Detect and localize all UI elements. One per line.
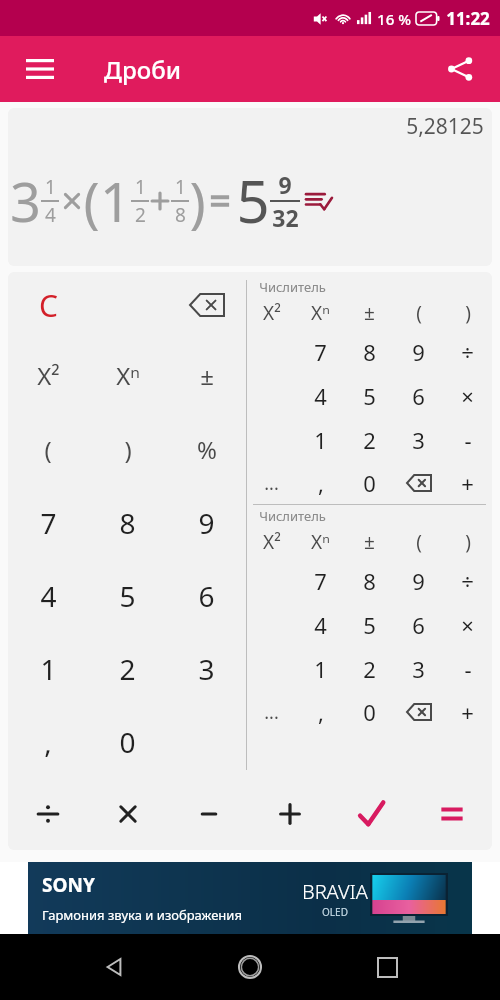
button[interactable]: ×	[443, 374, 492, 418]
staticText: -	[464, 425, 472, 455]
button[interactable]: +	[443, 462, 492, 504]
button[interactable]: ,	[8, 705, 88, 778]
button[interactable]: )	[443, 525, 492, 559]
button[interactable]: 3	[394, 418, 443, 462]
button[interactable]: -	[443, 418, 492, 462]
button[interactable]: 3	[394, 647, 443, 691]
button[interactable]: Recents	[364, 944, 410, 990]
staticText: 9	[412, 566, 425, 596]
staticText: Xⁿ	[311, 300, 330, 326]
button[interactable]: 3	[167, 632, 246, 705]
button[interactable]: ÷	[443, 559, 492, 603]
staticText: 1	[45, 174, 56, 200]
button[interactable]: 6	[394, 603, 443, 647]
button[interactable]: -	[443, 647, 492, 691]
button[interactable]: 7	[8, 486, 88, 559]
staticText: 1	[135, 174, 146, 200]
button[interactable]: Minus	[168, 778, 249, 850]
button[interactable]: Back	[91, 944, 137, 990]
button[interactable]: Share	[438, 47, 482, 91]
button[interactable]: 9	[167, 486, 246, 559]
staticText: ,	[318, 697, 324, 727]
button[interactable]: )	[443, 296, 492, 330]
button[interactable]: SONY	[28, 862, 472, 934]
button[interactable]: 1	[296, 647, 345, 691]
button[interactable]: Xⁿ	[296, 525, 345, 559]
button[interactable]: 8	[345, 559, 394, 603]
button[interactable]: 2	[88, 632, 167, 705]
button[interactable]: Clear one	[167, 272, 246, 338]
staticText: ±	[364, 300, 375, 326]
button[interactable]: ...	[247, 462, 296, 504]
button[interactable]: 5	[345, 603, 394, 647]
button[interactable]: )	[88, 412, 167, 486]
staticText: ±	[200, 359, 214, 392]
button[interactable]: Confirm	[330, 778, 411, 850]
button[interactable]: 6	[167, 559, 246, 632]
staticText: 7	[314, 566, 327, 596]
staticText: Дроби	[104, 53, 181, 86]
button[interactable]: (	[8, 412, 88, 486]
button[interactable]: Menu	[18, 47, 62, 91]
button[interactable]: ,	[296, 462, 345, 504]
staticText: 9	[198, 504, 215, 542]
button[interactable]: 4	[296, 374, 345, 418]
button[interactable]: 8	[88, 486, 167, 559]
button[interactable]: Backspace	[394, 462, 443, 504]
button[interactable]: Divide	[8, 778, 88, 850]
button[interactable]: Equals	[411, 778, 492, 850]
button[interactable]: X²	[8, 338, 88, 412]
button[interactable]: 5,28125	[8, 108, 492, 266]
button[interactable]: ×	[443, 603, 492, 647]
staticText: ...	[264, 700, 279, 725]
button[interactable]: 5	[88, 559, 167, 632]
button[interactable]: Multiply	[88, 778, 168, 850]
button[interactable]: ±	[345, 296, 394, 330]
button[interactable]: ,	[296, 691, 345, 733]
button[interactable]: 2	[345, 647, 394, 691]
button[interactable]: (	[394, 525, 443, 559]
button[interactable]: Backspace	[394, 691, 443, 733]
button[interactable]: 4	[8, 559, 88, 632]
button[interactable]: Home	[227, 944, 273, 990]
button[interactable]: Xⁿ	[296, 296, 345, 330]
button[interactable]: ±	[345, 525, 394, 559]
button[interactable]: ±	[167, 338, 246, 412]
button[interactable]: 4	[296, 603, 345, 647]
button[interactable]: C	[8, 272, 88, 338]
button[interactable]: 0	[345, 462, 394, 504]
button[interactable]: 7	[296, 330, 345, 374]
button[interactable]: (	[394, 296, 443, 330]
button[interactable]: 0	[345, 691, 394, 733]
button[interactable]: 1	[296, 418, 345, 462]
button[interactable]: 7	[296, 559, 345, 603]
button[interactable]: 9	[394, 330, 443, 374]
button[interactable]: Result options	[306, 190, 332, 212]
button[interactable]: 5	[345, 374, 394, 418]
staticText: Числитель	[259, 507, 326, 525]
button[interactable]: 0	[88, 705, 167, 778]
staticText: 16 %	[377, 9, 411, 29]
button[interactable]: ÷	[443, 330, 492, 374]
button[interactable]: 6	[394, 374, 443, 418]
staticText: 1	[314, 654, 327, 684]
button[interactable]: 9	[394, 559, 443, 603]
button[interactable]: X²	[247, 296, 296, 330]
button[interactable]: Xⁿ	[88, 338, 167, 412]
button[interactable]: Plus	[249, 778, 330, 850]
staticText: %	[197, 433, 217, 466]
button[interactable]: ...	[247, 691, 296, 733]
button[interactable]: 2	[345, 418, 394, 462]
button[interactable]: +	[443, 691, 492, 733]
button[interactable]: 1	[8, 632, 88, 705]
button[interactable]: X²	[247, 525, 296, 559]
button[interactable]: 8	[345, 330, 394, 374]
button[interactable]: %	[167, 412, 246, 486]
